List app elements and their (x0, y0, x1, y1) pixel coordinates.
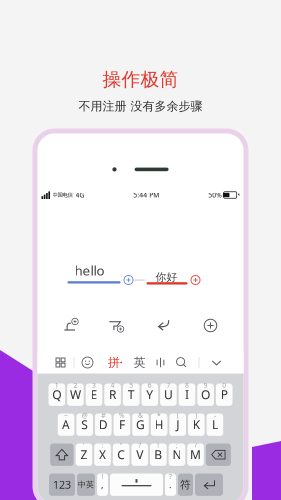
staticText: / (195, 441, 197, 450)
button[interactable]: Delete (206, 443, 231, 466)
staticText: 2 (73, 381, 77, 390)
staticText: E (90, 387, 97, 402)
button[interactable]: 7 (160, 383, 177, 406)
button[interactable]: % (114, 413, 130, 436)
button[interactable]: 4 (104, 383, 121, 406)
staticText: @ (82, 411, 88, 420)
button[interactable]: 中英 (77, 473, 95, 496)
staticText: ( (177, 411, 179, 420)
button[interactable]: 3 (86, 383, 102, 406)
staticText: X (99, 447, 106, 462)
button[interactable]: & (132, 413, 149, 436)
staticText: 123 (53, 477, 71, 492)
button[interactable]: 0 (216, 383, 232, 406)
button[interactable]: ( (169, 413, 186, 436)
staticText: ? (138, 441, 141, 450)
staticText: 3 (92, 381, 96, 390)
staticText: O (201, 387, 210, 402)
button[interactable]: 123 (49, 473, 75, 496)
button[interactable]: " (113, 443, 129, 466)
button[interactable]: # (95, 413, 112, 436)
button[interactable]: Shift (50, 443, 74, 466)
button[interactable]: ? (131, 443, 148, 466)
staticText: W (70, 387, 81, 402)
staticText: 英 (133, 355, 145, 370)
staticText: C (117, 447, 125, 462)
button[interactable]: / (187, 443, 204, 466)
staticText: : (101, 441, 103, 450)
button[interactable]: 2 (67, 383, 84, 406)
button[interactable]: ~ (58, 413, 74, 436)
button[interactable]: Input mode (150, 352, 170, 372)
button[interactable]: ? (165, 473, 176, 496)
button[interactable]: Emoji (77, 352, 97, 372)
button[interactable]: Add filter (105, 317, 125, 333)
button[interactable]: * (151, 413, 167, 436)
staticText: ; (176, 441, 178, 450)
button[interactable]: ; (169, 443, 185, 466)
button[interactable]: ! (97, 473, 108, 496)
button[interactable]: Hide keyboard (206, 352, 226, 372)
staticText: V (136, 447, 143, 462)
staticText: A (62, 417, 70, 432)
staticText: 6 (148, 381, 152, 390)
staticText: Q (52, 387, 61, 402)
staticText: 0 (222, 381, 226, 390)
button[interactable]: Add (200, 317, 220, 333)
staticText: & (138, 411, 143, 420)
staticText: K (193, 417, 200, 432)
staticText: I (185, 387, 189, 402)
button[interactable]: Undo (153, 317, 173, 333)
staticText: Y (146, 387, 153, 402)
button[interactable]: Space (110, 473, 163, 496)
staticText: 中英 (78, 480, 94, 489)
staticText: 符 (180, 478, 191, 491)
staticText: ! (101, 472, 103, 481)
staticText: % (119, 411, 125, 420)
staticText: - (214, 411, 216, 420)
button[interactable]: ) (188, 413, 205, 436)
button[interactable]: : (94, 443, 111, 466)
staticText: * (157, 411, 161, 420)
button[interactable]: Add phrase (60, 317, 80, 333)
button[interactable]: 8 (179, 383, 195, 406)
staticText: 9 (204, 381, 208, 390)
button[interactable]: 英 (129, 352, 149, 372)
staticText: R (109, 387, 116, 402)
staticText: L (212, 417, 218, 432)
button[interactable]: @ (76, 413, 93, 436)
button[interactable]: - (207, 413, 223, 436)
staticText: J (176, 417, 179, 432)
staticText: P (221, 387, 228, 402)
button[interactable]: 9 (197, 383, 214, 406)
staticText: hello (74, 261, 104, 279)
button[interactable]: 5 (123, 383, 139, 406)
staticText: ! (157, 441, 159, 450)
staticText: 8 (185, 381, 189, 390)
staticText: " (120, 441, 123, 450)
staticText: T (128, 387, 135, 402)
button[interactable]: ' (76, 443, 92, 466)
staticText: 5 (129, 381, 133, 390)
button[interactable]: 符 (178, 473, 193, 496)
button[interactable]: Search (171, 352, 191, 372)
button[interactable]: Return (195, 473, 223, 496)
staticText: 4G (75, 191, 84, 199)
staticText: U (164, 387, 173, 402)
staticText: 中国电信 (52, 192, 72, 198)
staticText: G (136, 417, 145, 432)
staticText: S (81, 417, 88, 432)
staticText: 你好 (155, 271, 177, 284)
button[interactable]: 1 (48, 383, 65, 406)
staticText: 操作极简 (102, 68, 178, 91)
button[interactable]: 拼 (105, 352, 125, 372)
staticText: B (154, 447, 162, 462)
staticText: # (101, 411, 105, 420)
button[interactable]: 6 (141, 383, 158, 406)
staticText: 4 (111, 381, 115, 390)
button[interactable]: ! (150, 443, 167, 466)
staticText: 1 (55, 381, 59, 390)
button[interactable]: Keyboard layout (50, 352, 70, 372)
staticText: . (169, 478, 172, 491)
staticText: ~ (64, 411, 68, 420)
